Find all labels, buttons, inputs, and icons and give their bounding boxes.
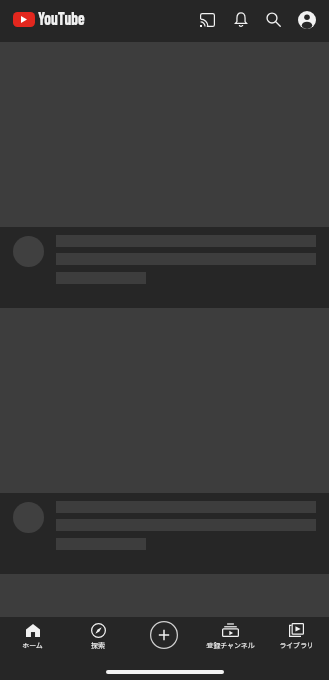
button[interactable]: YouTube [13, 9, 94, 29]
staticText: YouTube [38, 7, 85, 27]
button[interactable]: Cast [191, 3, 224, 36]
button[interactable]: ライブラリ [263, 617, 329, 668]
button[interactable]: 登録チャンネル [197, 617, 263, 668]
staticText: 登録チャンネル [206, 640, 255, 650]
staticText: ライブラリ [279, 640, 314, 650]
button[interactable]: Account [290, 3, 323, 36]
button[interactable]: 探索 [65, 617, 131, 668]
button[interactable]: Create [131, 617, 197, 668]
button[interactable]: Notifications [224, 3, 257, 36]
button[interactable]: ホーム [0, 617, 65, 668]
button[interactable]: Search [257, 3, 290, 36]
staticText: ホーム [22, 640, 43, 650]
staticText: 探索 [91, 640, 105, 650]
